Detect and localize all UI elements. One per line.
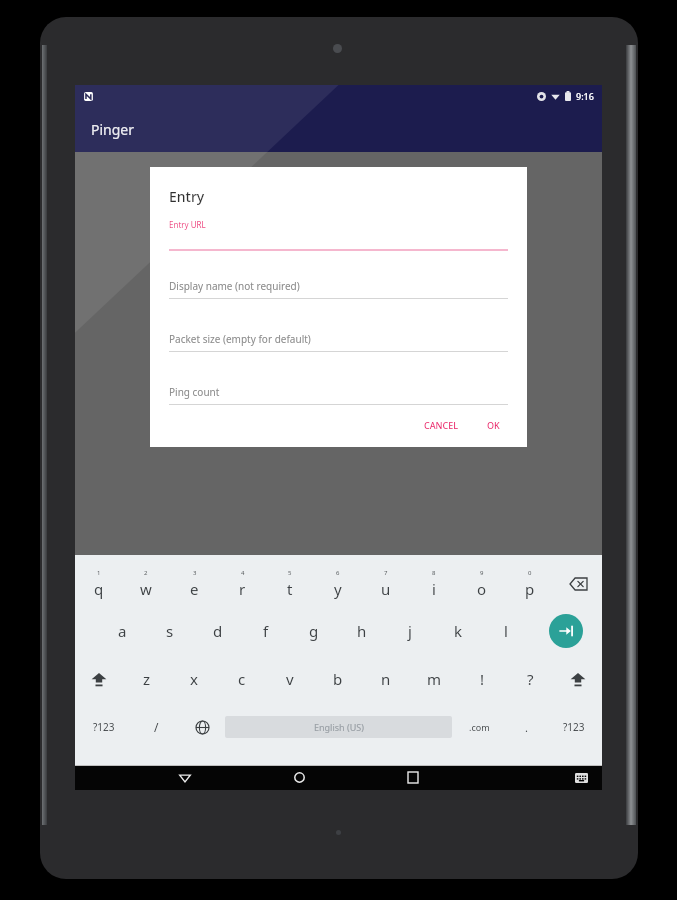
button[interactable]: l (482, 607, 530, 655)
staticText: u (381, 579, 391, 599)
staticText: 6 (336, 569, 340, 577)
staticText: b (333, 669, 343, 689)
staticText: 7 (384, 569, 388, 577)
staticText: o (477, 579, 487, 599)
button[interactable]: ?123 (75, 703, 133, 751)
staticText: w (140, 579, 152, 599)
staticText: ! (480, 669, 485, 689)
staticText: ?123 (563, 720, 585, 734)
button[interactable]: Switch keyboard (566, 765, 596, 790)
staticText: OK (487, 419, 500, 431)
button[interactable]: 7 (362, 561, 410, 607)
staticText: Display name (not required) (169, 279, 300, 293)
button[interactable]: . (506, 703, 546, 751)
button[interactable]: 1 (75, 561, 122, 607)
staticText: 1 (97, 569, 101, 577)
button[interactable]: OK (479, 413, 508, 437)
button[interactable]: 6 (314, 561, 362, 607)
button[interactable]: 4 (218, 561, 266, 607)
button[interactable]: b (314, 655, 362, 703)
button[interactable]: Home (282, 765, 316, 790)
button[interactable]: Back (168, 765, 202, 790)
button[interactable]: s (146, 607, 194, 655)
button[interactable]: CANCEL (416, 413, 467, 437)
button[interactable]: m (410, 655, 458, 703)
staticText: m (427, 669, 442, 689)
staticText: y (334, 579, 342, 599)
staticText: Ping count (169, 385, 220, 399)
staticText: g (309, 621, 319, 641)
button[interactable]: x (170, 655, 218, 703)
staticText: n (381, 669, 391, 689)
button[interactable]: a (99, 607, 146, 655)
button[interactable]: 5 (266, 561, 314, 607)
staticText: c (238, 669, 246, 689)
button[interactable]: Shift (75, 655, 123, 703)
staticText: f (263, 621, 269, 641)
staticText: h (357, 621, 367, 641)
staticText: English (US) (314, 721, 364, 733)
button[interactable]: h (338, 607, 386, 655)
staticText: v (286, 669, 294, 689)
button[interactable]: g (290, 607, 338, 655)
button[interactable]: j (386, 607, 434, 655)
button[interactable]: ? (506, 655, 554, 703)
staticText: e (190, 579, 199, 599)
button[interactable]: 3 (170, 561, 218, 607)
button[interactable]: n (362, 655, 410, 703)
button[interactable]: Shift (554, 655, 602, 703)
button[interactable]: 9 (458, 561, 506, 607)
button[interactable]: Next (530, 607, 602, 655)
staticText: z (143, 669, 151, 689)
staticText: CANCEL (424, 419, 459, 431)
staticText: .com (469, 721, 490, 733)
button[interactable]: / (133, 703, 179, 751)
staticText: Entry (169, 187, 205, 206)
button[interactable]: Ping count (169, 385, 508, 405)
staticText: 0 (528, 569, 532, 577)
staticText: p (525, 579, 535, 599)
staticText: 9 (480, 569, 484, 577)
button[interactable]: v (266, 655, 314, 703)
button[interactable]: c (218, 655, 266, 703)
staticText: 9:16 (576, 90, 594, 102)
button[interactable]: ?123 (546, 703, 602, 751)
staticText: d (213, 621, 223, 641)
staticText: Entry URL (169, 219, 206, 230)
button[interactable]: z (123, 655, 170, 703)
staticText: 4 (241, 569, 245, 577)
staticText: k (454, 621, 463, 641)
button[interactable]: ! (458, 655, 506, 703)
button[interactable]: 8 (410, 561, 458, 607)
button[interactable]: .com (452, 703, 506, 751)
button[interactable]: f (242, 607, 290, 655)
button[interactable]: Pinger (75, 107, 602, 152)
button[interactable]: Backspace (554, 561, 602, 607)
staticText: . (525, 720, 528, 735)
staticText: 5 (288, 569, 292, 577)
staticText: r (239, 579, 246, 599)
staticText: Packet size (empty for default) (169, 332, 311, 346)
button[interactable]: English (US) (225, 716, 452, 738)
staticText: a (118, 621, 127, 641)
staticText: t (287, 579, 293, 599)
staticText: j (408, 621, 412, 641)
staticText: ? (527, 669, 534, 689)
staticText: x (190, 669, 198, 689)
button[interactable]: k (434, 607, 482, 655)
staticText: ?123 (93, 720, 115, 734)
button[interactable]: d (194, 607, 242, 655)
staticText: 8 (432, 569, 436, 577)
button[interactable]: Packet size (empty for default) (169, 332, 508, 352)
button[interactable]: Change language (179, 703, 225, 751)
staticText: Pinger (91, 120, 135, 139)
staticText: 2 (144, 569, 148, 577)
staticText: l (504, 621, 508, 641)
staticText: / (154, 719, 159, 735)
button[interactable]: 2 (122, 561, 170, 607)
button[interactable]: Display name (not required) (169, 279, 508, 299)
staticText: i (432, 579, 436, 599)
button[interactable]: Recent apps (396, 765, 430, 790)
button[interactable]: 0 (506, 561, 554, 607)
